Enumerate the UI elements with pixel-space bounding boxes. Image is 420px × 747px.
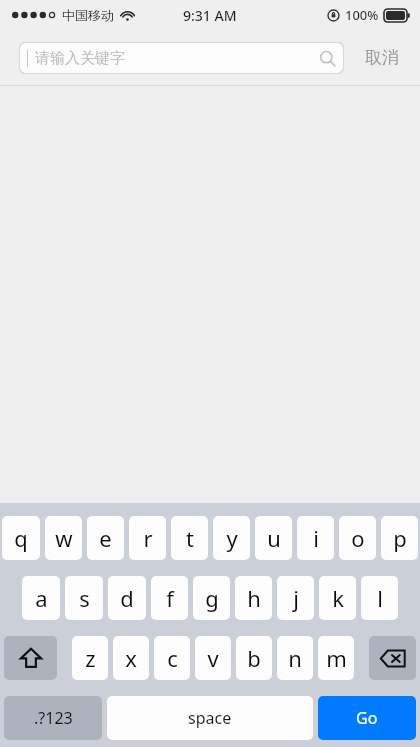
staticText: d	[120, 583, 134, 613]
button[interactable]: q	[2, 516, 40, 560]
button[interactable]: e	[87, 516, 124, 560]
staticText: e	[99, 523, 112, 553]
staticText: w	[55, 523, 73, 553]
button[interactable]: y	[213, 516, 250, 560]
staticText: m	[326, 643, 347, 673]
button[interactable]: r	[129, 516, 166, 560]
button[interactable]: a	[22, 576, 60, 620]
button[interactable]: z	[72, 636, 108, 680]
staticText: q	[14, 523, 28, 553]
button[interactable]: o	[339, 516, 376, 560]
button[interactable]: l	[361, 576, 398, 620]
staticText: 取消	[365, 47, 399, 68]
button[interactable]: t	[171, 516, 208, 560]
button[interactable]: Go	[318, 696, 416, 740]
staticText: r	[143, 523, 153, 553]
staticText: z	[85, 643, 96, 673]
staticText: o	[351, 523, 365, 553]
button[interactable]: n	[277, 636, 313, 680]
staticText: 请输入关键字	[35, 49, 125, 68]
staticText: l	[377, 583, 383, 613]
staticText: t	[186, 523, 194, 553]
button[interactable]: m	[318, 636, 354, 680]
staticText: 9:31 AM	[183, 6, 237, 25]
button[interactable]: space	[107, 696, 313, 740]
button[interactable]: 取消	[344, 30, 420, 85]
staticText: n	[288, 643, 302, 673]
staticText: u	[267, 523, 281, 553]
button[interactable]: 请输入关键字	[19, 42, 344, 74]
button[interactable]: u	[255, 516, 292, 560]
staticText: p	[393, 523, 407, 553]
button[interactable]: c	[154, 636, 190, 680]
button[interactable]: w	[45, 516, 82, 560]
button[interactable]: j	[277, 576, 314, 620]
staticText: 中国移动	[62, 7, 114, 23]
staticText: a	[35, 583, 48, 613]
staticText: s	[79, 583, 90, 613]
staticText: b	[247, 643, 261, 673]
button[interactable]: Delete	[369, 636, 416, 680]
staticText: j	[293, 583, 299, 613]
staticText: c	[167, 643, 178, 673]
button[interactable]: h	[235, 576, 272, 620]
button[interactable]: k	[319, 576, 356, 620]
staticText: f	[166, 583, 174, 613]
button[interactable]: x	[113, 636, 149, 680]
staticText: x	[125, 643, 137, 673]
button[interactable]: p	[381, 516, 418, 560]
staticText: space	[188, 707, 232, 729]
staticText: v	[207, 643, 219, 673]
staticText: g	[205, 583, 219, 613]
button[interactable]: b	[236, 636, 272, 680]
button[interactable]: .?123	[4, 696, 102, 740]
button[interactable]: i	[297, 516, 334, 560]
staticText: i	[313, 523, 319, 553]
staticText: k	[332, 583, 344, 613]
staticText: 100%	[345, 6, 379, 24]
button[interactable]: Shift	[4, 636, 57, 680]
staticText: h	[247, 583, 261, 613]
staticText: y	[226, 523, 238, 553]
staticText: Go	[356, 707, 378, 729]
button[interactable]: d	[108, 576, 146, 620]
button[interactable]: g	[193, 576, 230, 620]
button[interactable]: v	[195, 636, 231, 680]
button[interactable]: f	[151, 576, 188, 620]
staticText: .?123	[34, 707, 73, 729]
button[interactable]: s	[65, 576, 103, 620]
